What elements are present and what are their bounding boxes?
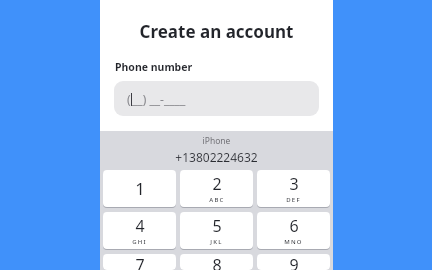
staticText: Phone number xyxy=(115,60,193,74)
staticText: MNO xyxy=(284,238,303,246)
staticText: 2 xyxy=(212,173,222,195)
staticText: 8 xyxy=(212,254,222,270)
staticText: Create an account xyxy=(100,20,333,43)
staticText: 1 xyxy=(135,177,145,200)
staticText: +13802224632 xyxy=(100,149,333,165)
staticText: iPhone xyxy=(100,135,333,147)
staticText: __) __-____ xyxy=(132,91,186,107)
staticText: 5 xyxy=(212,215,222,237)
button[interactable]: 9 xyxy=(255,254,332,270)
button[interactable]: 4 xyxy=(101,212,178,250)
staticText: ( xyxy=(127,91,131,107)
button[interactable]: 6 xyxy=(255,212,332,250)
staticText: GHI xyxy=(132,238,147,246)
button[interactable]: 3 xyxy=(255,170,332,208)
staticText: 7 xyxy=(135,254,145,270)
staticText: 9 xyxy=(289,254,299,270)
button[interactable]: 8 xyxy=(178,254,255,270)
button[interactable]: 1 xyxy=(101,170,178,208)
button[interactable]: 2 xyxy=(178,170,255,208)
staticText: 3 xyxy=(289,173,299,195)
button[interactable]: ( xyxy=(114,81,319,116)
button[interactable]: 5 xyxy=(178,212,255,250)
staticText: 6 xyxy=(289,215,299,237)
staticText: DEF xyxy=(286,196,301,204)
staticText: 4 xyxy=(135,215,145,237)
staticText: ABC xyxy=(209,196,225,204)
staticText: JKL xyxy=(210,238,223,246)
button[interactable]: 7 xyxy=(101,254,178,270)
